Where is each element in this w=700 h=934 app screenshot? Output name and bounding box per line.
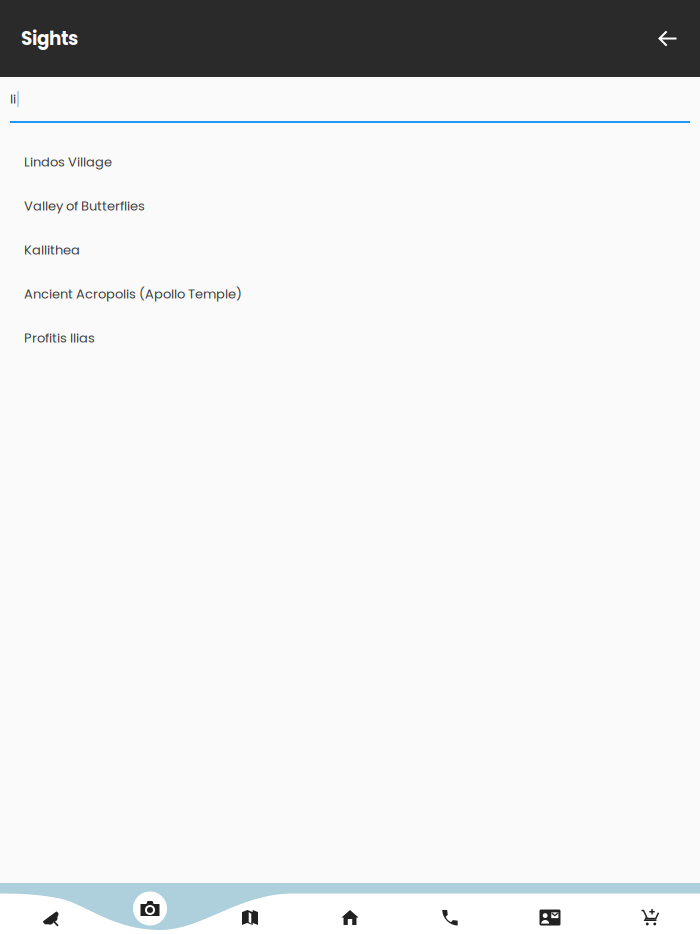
button[interactable]: Map [200, 883, 300, 934]
button[interactable]: Home [300, 883, 400, 934]
button[interactable]: Kallithea [0, 228, 700, 272]
staticText: Ancient Acropolis (Apollo Temple) [24, 285, 242, 303]
button[interactable]: Camera [100, 883, 200, 934]
staticText: Sights [21, 26, 78, 51]
button[interactable]: Ancient Acropolis (Apollo Temple) [0, 272, 700, 316]
staticText: Kallithea [24, 241, 80, 259]
staticText: Lindos Village [24, 153, 112, 171]
button[interactable]: Valley of Butterflies [0, 184, 700, 228]
button[interactable]: Cart [600, 883, 700, 934]
button[interactable]: Lindos Village [0, 140, 700, 184]
button[interactable]: Contacts [500, 883, 600, 934]
button[interactable]: Profitis Ilias [0, 316, 700, 360]
button[interactable]: Beach [0, 883, 100, 934]
button[interactable]: Back [645, 15, 691, 61]
staticText: li [10, 90, 16, 108]
staticText: Profitis Ilias [24, 329, 95, 347]
button[interactable]: Call [400, 883, 500, 934]
staticText: Valley of Butterflies [24, 197, 145, 215]
